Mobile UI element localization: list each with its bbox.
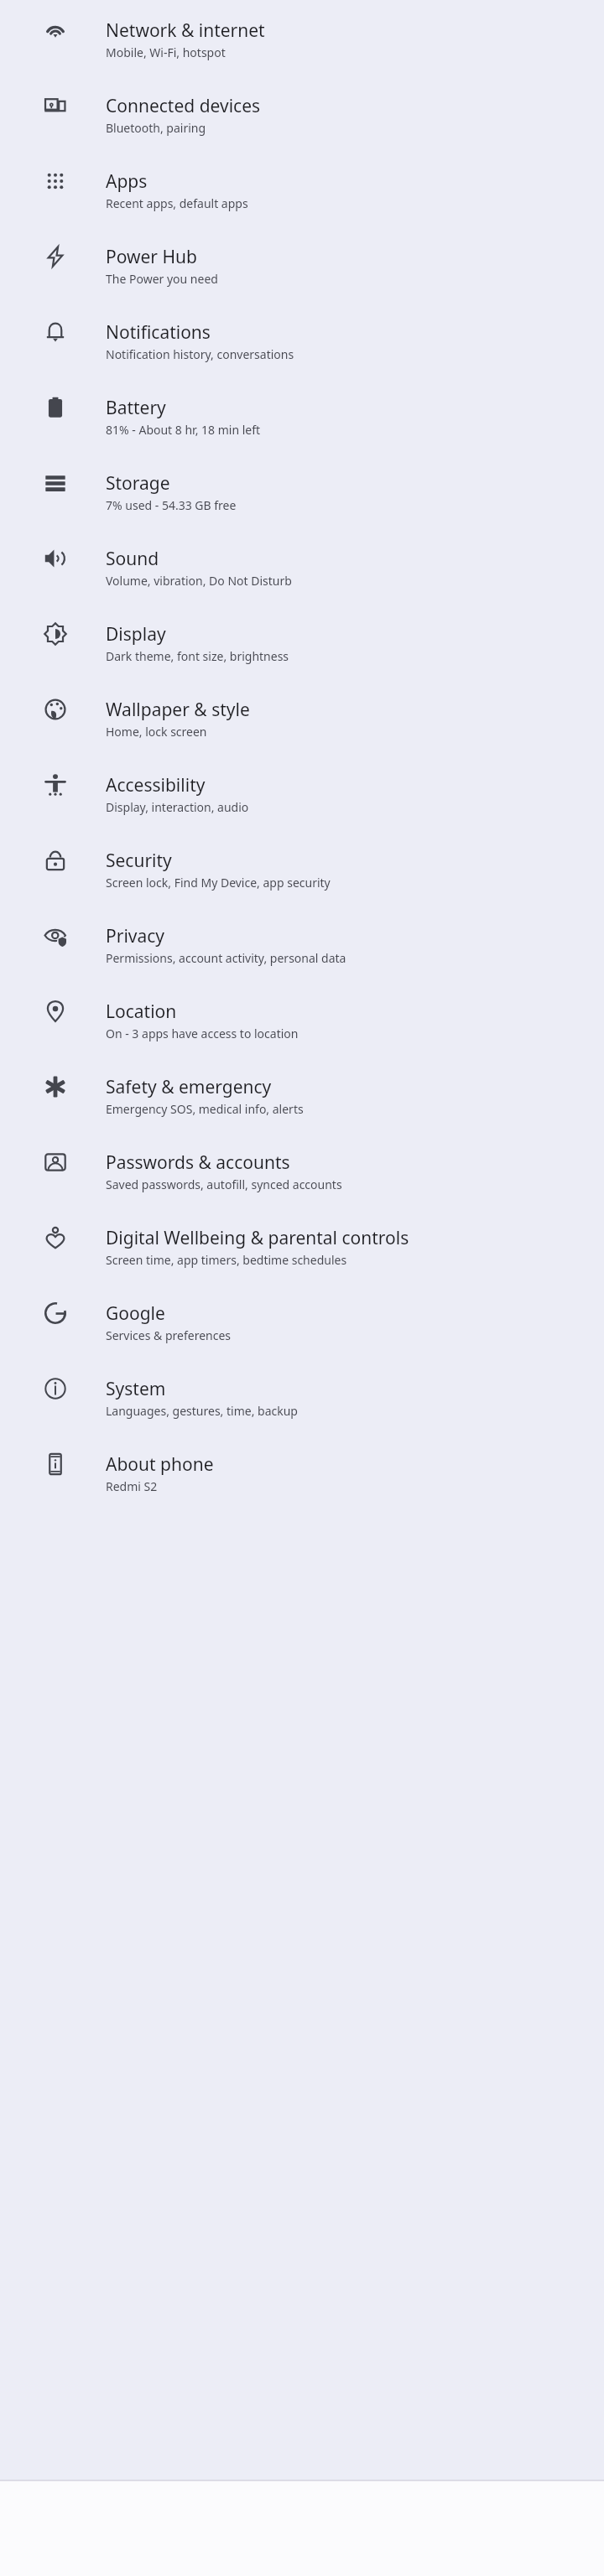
- button[interactable]: System: [0, 1360, 604, 1436]
- button[interactable]: Accessibility: [0, 756, 604, 832]
- staticText: Sound: [106, 547, 159, 571]
- staticText: Redmi S2: [106, 1478, 158, 1494]
- staticText: Wallpaper & style: [106, 698, 250, 722]
- button[interactable]: About phone: [0, 1436, 604, 1511]
- button[interactable]: Display: [0, 605, 604, 681]
- staticText: Display: [106, 622, 166, 647]
- staticText: Connected devices: [106, 94, 261, 118]
- staticText: Languages, gestures, time, backup: [106, 1403, 298, 1419]
- button[interactable]: Passwords & accounts: [0, 1134, 604, 1209]
- staticText: System: [106, 1377, 166, 1401]
- button[interactable]: Apps: [0, 153, 604, 228]
- button[interactable]: Security: [0, 832, 604, 907]
- staticText: Battery: [106, 396, 166, 420]
- staticText: On - 3 apps have access to location: [106, 1026, 299, 1041]
- button[interactable]: Google: [0, 1285, 604, 1360]
- staticText: Digital Wellbeing & parental controls: [106, 1226, 409, 1250]
- staticText: Privacy: [106, 924, 165, 948]
- button[interactable]: Power Hub: [0, 228, 604, 304]
- staticText: Display, interaction, audio: [106, 799, 249, 815]
- button[interactable]: Connected devices: [0, 77, 604, 153]
- staticText: Accessibility: [106, 773, 206, 797]
- staticText: Power Hub: [106, 245, 197, 269]
- button[interactable]: Location: [0, 983, 604, 1058]
- staticText: Security: [106, 849, 172, 873]
- staticText: Bluetooth, pairing: [106, 120, 206, 136]
- staticText: Network & internet: [106, 18, 265, 43]
- button[interactable]: Wallpaper & style: [0, 681, 604, 756]
- button[interactable]: Safety & emergency: [0, 1058, 604, 1134]
- button[interactable]: Network & internet: [0, 2, 604, 77]
- button[interactable]: Privacy: [0, 907, 604, 983]
- staticText: Screen time, app timers, bedtime schedul…: [106, 1252, 347, 1268]
- staticText: Emergency SOS, medical info, alerts: [106, 1101, 304, 1117]
- staticText: 81% - About 8 hr, 18 min left: [106, 422, 261, 438]
- staticText: Saved passwords, autofill, synced accoun…: [106, 1176, 342, 1192]
- staticText: Apps: [106, 169, 148, 194]
- staticText: Home, lock screen: [106, 724, 207, 740]
- button[interactable]: Digital Wellbeing & parental controls: [0, 1209, 604, 1285]
- staticText: Storage: [106, 471, 170, 496]
- staticText: About phone: [106, 1452, 214, 1477]
- staticText: The Power you need: [106, 271, 218, 287]
- staticText: Notification history, conversations: [106, 346, 294, 362]
- staticText: Mobile, Wi-Fi, hotspot: [106, 44, 226, 60]
- staticText: Dark theme, font size, brightness: [106, 648, 289, 664]
- staticText: Passwords & accounts: [106, 1150, 290, 1175]
- staticText: 7% used - 54.33 GB free: [106, 497, 237, 513]
- staticText: Google: [106, 1301, 165, 1326]
- staticText: Notifications: [106, 320, 211, 345]
- staticText: Location: [106, 1000, 177, 1024]
- button[interactable]: Storage: [0, 454, 604, 530]
- button[interactable]: Sound: [0, 530, 604, 605]
- staticText: Volume, vibration, Do Not Disturb: [106, 573, 292, 589]
- staticText: Recent apps, default apps: [106, 195, 248, 211]
- button[interactable]: Battery: [0, 379, 604, 454]
- staticText: Screen lock, Find My Device, app securit…: [106, 875, 331, 891]
- staticText: Services & preferences: [106, 1327, 232, 1343]
- button[interactable]: Notifications: [0, 304, 604, 379]
- staticText: Permissions, account activity, personal …: [106, 950, 346, 966]
- staticText: Safety & emergency: [106, 1075, 272, 1099]
